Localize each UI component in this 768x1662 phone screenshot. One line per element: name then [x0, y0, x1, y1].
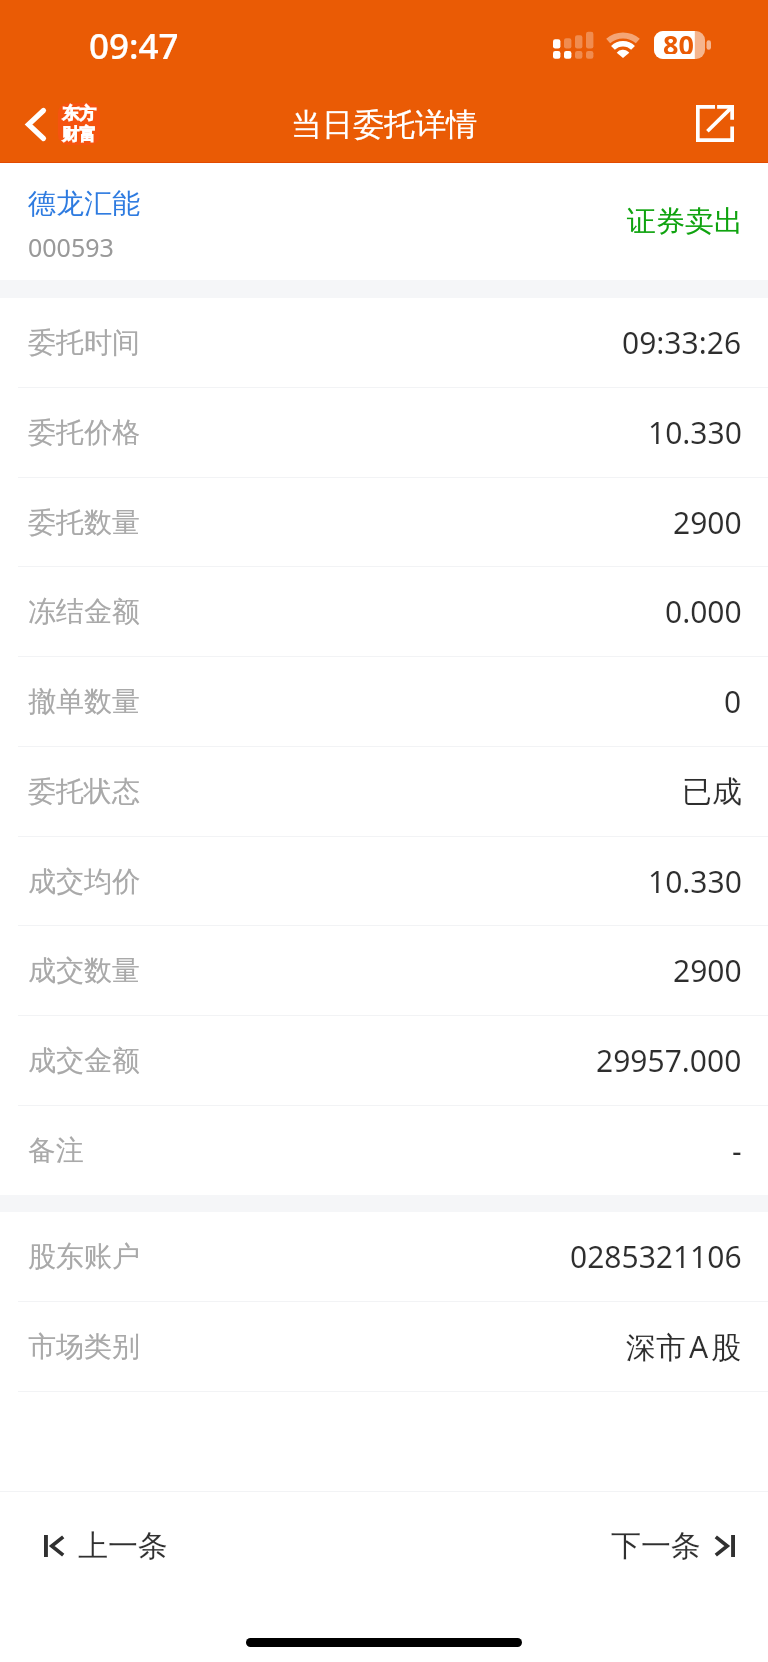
staticText: 撤单数量 [28, 684, 140, 719]
button[interactable]: 成交均价 [0, 837, 768, 926]
staticText: 0.000 [665, 591, 742, 632]
staticText: 09:47 [89, 22, 179, 70]
staticText: 市场类别 [28, 1329, 140, 1364]
staticText: 29957.000 [596, 1040, 742, 1081]
button[interactable]: 委托时间 [0, 298, 768, 388]
staticText: 0 [724, 681, 742, 722]
staticText: 80 [663, 26, 694, 54]
staticText: 委托时间 [28, 325, 140, 360]
button[interactable]: 市场类别 [0, 1302, 768, 1392]
staticText: 委托状态 [28, 774, 140, 809]
button[interactable]: 委托状态 [0, 747, 768, 837]
staticText: 000593 [28, 230, 114, 264]
staticText: 下一条 [611, 1527, 701, 1565]
staticText: 股东账户 [28, 1239, 140, 1274]
button[interactable]: 上一条 [0, 1492, 192, 1582]
staticText: 10.330 [648, 861, 742, 902]
button[interactable]: Back [0, 95, 110, 153]
staticText: 委托数量 [28, 505, 140, 540]
staticText: 德龙汇能 [28, 186, 140, 221]
staticText: 当日委托详情 [291, 105, 477, 144]
staticText: 成交数量 [28, 953, 140, 988]
staticText: 上一条 [78, 1527, 168, 1565]
staticText: 10.330 [648, 412, 742, 453]
staticText: 0285321106 [570, 1236, 742, 1277]
staticText: 09:33:26 [622, 322, 742, 363]
staticText: 成交均价 [28, 864, 140, 899]
staticText: 成交金额 [28, 1043, 140, 1078]
button[interactable]: 股东账户 [0, 1212, 768, 1302]
button[interactable]: 委托数量 [0, 478, 768, 567]
staticText: 2900 [673, 950, 742, 991]
staticText: 冻结金额 [28, 594, 140, 629]
staticText: 证券卖出 [627, 203, 743, 240]
button[interactable]: 撤单数量 [0, 657, 768, 747]
staticText: 东方 [62, 103, 96, 124]
button[interactable]: 备注 [0, 1106, 768, 1195]
staticText: 备注 [28, 1133, 84, 1168]
staticText: 2900 [673, 502, 742, 543]
staticText: - [732, 1130, 742, 1171]
button[interactable]: Share [680, 91, 768, 156]
button[interactable]: 冻结金额 [0, 567, 768, 657]
button[interactable]: 下一条 [587, 1492, 768, 1582]
button[interactable]: 委托价格 [0, 388, 768, 478]
staticText: 委托价格 [28, 415, 140, 450]
button[interactable]: 成交金额 [0, 1016, 768, 1106]
staticText: 深市 A 股 [626, 1326, 742, 1367]
staticText: 已成 [682, 773, 742, 811]
staticText: 财富 [62, 124, 96, 145]
button[interactable]: 成交数量 [0, 926, 768, 1016]
